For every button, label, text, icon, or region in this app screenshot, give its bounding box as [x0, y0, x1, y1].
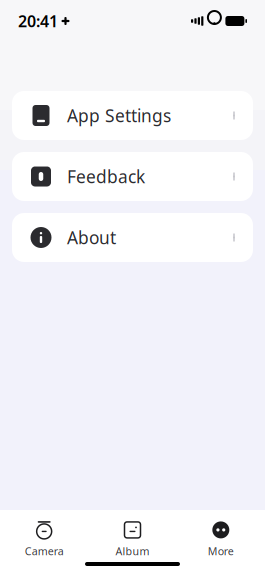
button[interactable]: App Settings [12, 91, 253, 140]
staticText: Feedback [67, 165, 145, 188]
staticText: Album [115, 544, 149, 558]
button[interactable]: Album [88, 519, 177, 559]
staticText: More [208, 544, 234, 558]
button[interactable]: More [177, 519, 265, 559]
button[interactable]: Camera [0, 519, 88, 559]
button[interactable]: Feedback [12, 152, 253, 201]
staticText: 20:41 [18, 10, 58, 32]
staticText: App Settings [67, 104, 171, 127]
button[interactable]: About [12, 213, 253, 262]
staticText: About [67, 226, 116, 249]
staticText: Camera [25, 544, 64, 558]
